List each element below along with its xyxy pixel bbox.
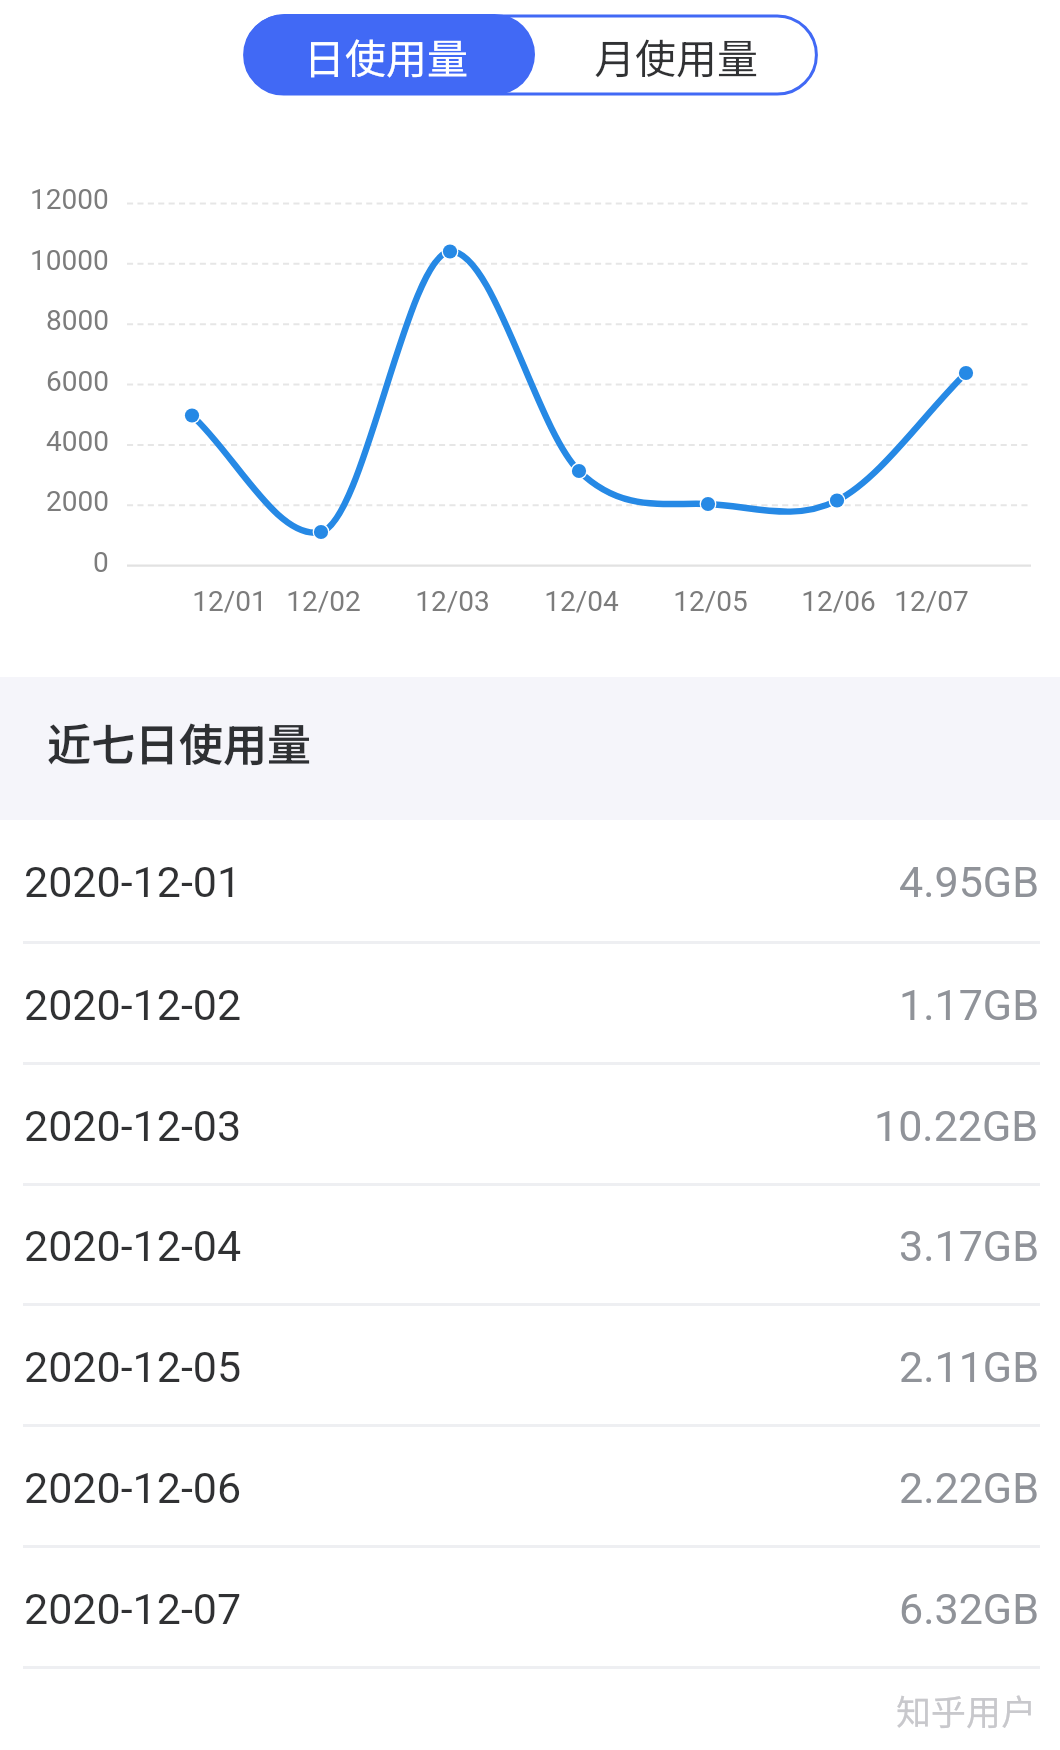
staticText: 12000 (30, 183, 109, 216)
staticText: 10.22GB (874, 1101, 1039, 1151)
staticText: 6.32GB (899, 1584, 1039, 1634)
staticText: 2020-12-07 (24, 1584, 242, 1634)
staticText: 6000 (46, 365, 109, 398)
staticText: 12/05 (673, 585, 748, 618)
staticText: 2020-12-04 (24, 1221, 242, 1271)
staticText: 2020-12-02 (24, 980, 242, 1030)
staticText: 2020-12-01 (24, 857, 242, 907)
staticText: 2020-12-06 (24, 1463, 242, 1513)
staticText: 8000 (46, 304, 109, 337)
staticText: 0 (93, 546, 109, 579)
staticText: 12/03 (415, 585, 490, 618)
staticText: 近七日使用量 (47, 710, 311, 774)
staticText: 知乎用户 (896, 1684, 1037, 1735)
staticText: 3.17GB (899, 1221, 1039, 1271)
staticText: 2.22GB (899, 1463, 1039, 1513)
button[interactable]: 2020-12-01 (0, 820, 1060, 944)
button[interactable]: 2020-12-04 (0, 1186, 1060, 1306)
staticText: 10000 (30, 244, 109, 277)
button[interactable]: 2020-12-07 (0, 1548, 1060, 1669)
button[interactable]: 2020-12-05 (0, 1306, 1060, 1427)
staticText: 2000 (46, 485, 109, 518)
staticText: 12/02 (286, 585, 361, 618)
staticText: 月使用量 (594, 26, 758, 85)
staticText: 1.17GB (899, 980, 1039, 1030)
button[interactable]: 2020-12-03 (0, 1065, 1060, 1186)
button[interactable]: 月使用量 (535, 14, 817, 95)
staticText: 12/01 (192, 585, 267, 618)
staticText: 12/06 (801, 585, 876, 618)
staticText: 日使用量 (304, 26, 468, 85)
staticText: 12/04 (544, 585, 619, 618)
button[interactable]: 日使用量 (244, 14, 535, 95)
staticText: 2020-12-03 (24, 1101, 242, 1151)
staticText: 2020-12-05 (24, 1342, 242, 1392)
staticText: 4.95GB (899, 857, 1039, 907)
staticText: 4000 (46, 425, 109, 458)
button[interactable]: 2020-12-06 (0, 1427, 1060, 1548)
button[interactable]: 2020-12-02 (0, 944, 1060, 1065)
staticText: 12/07 (894, 585, 969, 618)
staticText: 2.11GB (899, 1342, 1039, 1392)
